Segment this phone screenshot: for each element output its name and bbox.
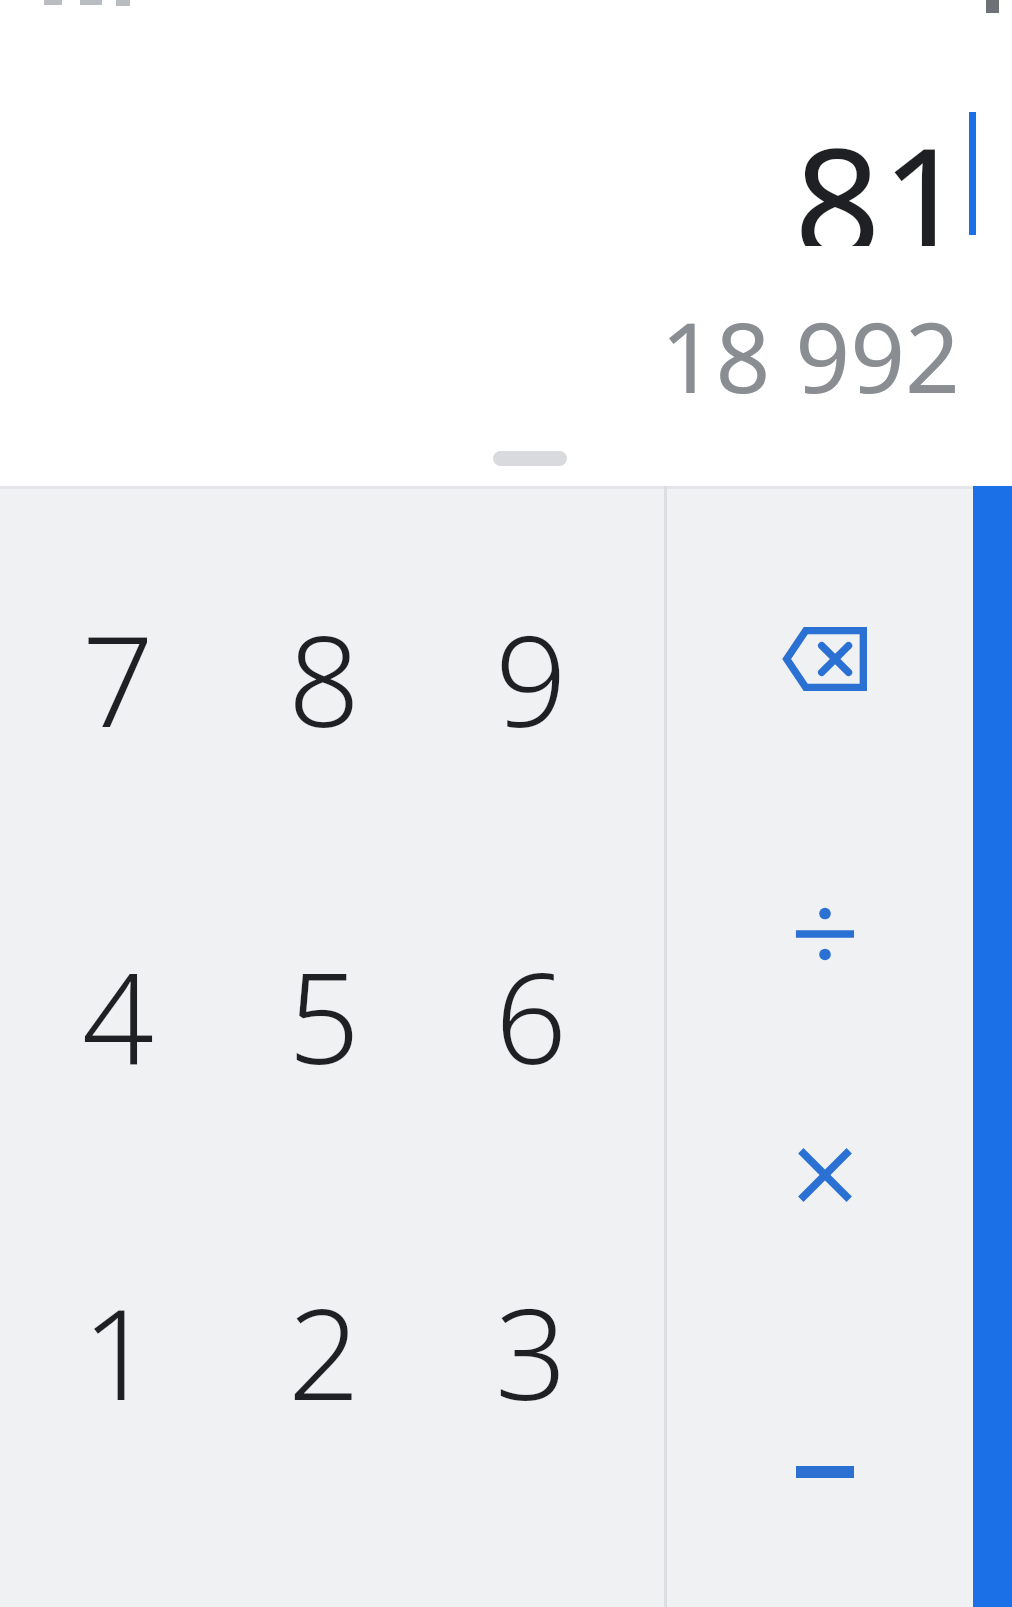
button[interactable]: Backspace bbox=[695, 519, 955, 799]
button[interactable]: 3 bbox=[428, 1183, 634, 1519]
button[interactable]: Divide bbox=[695, 794, 955, 1074]
staticText: 18 992 bbox=[0, 290, 960, 400]
staticText: 3 bbox=[495, 1265, 567, 1437]
staticText: 4 bbox=[82, 929, 154, 1101]
button[interactable]: 1 bbox=[15, 1183, 221, 1519]
button[interactable]: 18 992 bbox=[0, 290, 960, 400]
button[interactable]: 9 bbox=[428, 510, 634, 846]
button[interactable]: 7 bbox=[15, 510, 221, 846]
staticText: 9 bbox=[495, 592, 567, 764]
staticText: 5 bbox=[288, 929, 360, 1101]
button[interactable]: 5 bbox=[221, 847, 427, 1183]
button[interactable]: 4 bbox=[15, 847, 221, 1183]
staticText: 6 bbox=[495, 929, 567, 1101]
button[interactable]: Expand history bbox=[493, 451, 567, 466]
button[interactable]: 6 bbox=[428, 847, 634, 1183]
button[interactable]: 8 bbox=[221, 510, 427, 846]
button[interactable]: Multiply bbox=[695, 1035, 955, 1315]
button[interactable]: 81 000÷9−8+10 000 bbox=[0, 96, 968, 246]
staticText: 1 bbox=[82, 1265, 154, 1437]
staticText: 81 000÷9−8+10 000 bbox=[0, 96, 968, 246]
button[interactable]: 2 bbox=[221, 1183, 427, 1519]
staticText: 7 bbox=[82, 592, 154, 764]
staticText: 8 bbox=[288, 592, 360, 764]
staticText: 2 bbox=[288, 1265, 360, 1437]
button[interactable]: Minus bbox=[695, 1332, 955, 1607]
